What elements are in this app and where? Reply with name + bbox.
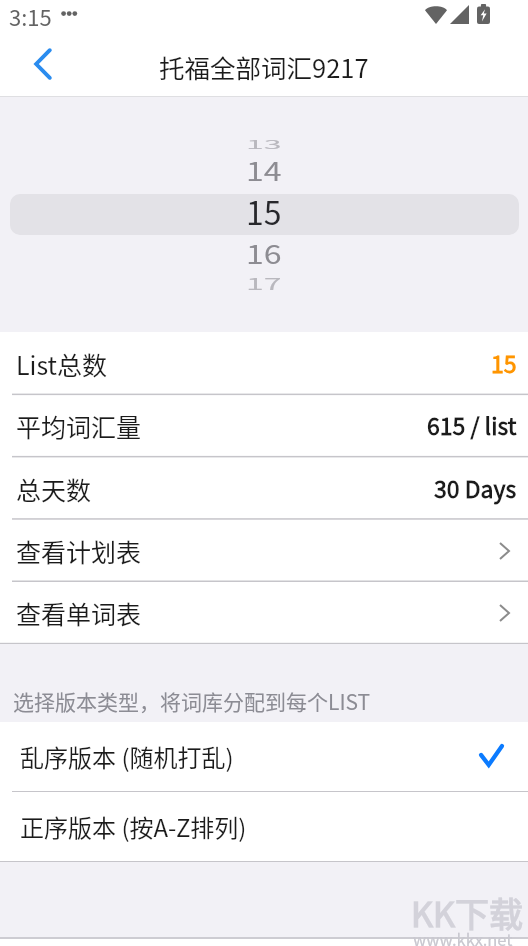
staticText: 16 (246, 234, 282, 272)
button[interactable]: 查看计划表 (0, 519, 528, 581)
button[interactable]: 平均词汇量 (0, 394, 528, 456)
staticText: 托福全部词汇9217 (159, 48, 369, 85)
staticText: 30 Days (434, 471, 517, 504)
staticText: 总天数 (16, 471, 92, 507)
staticText: 17 (246, 271, 282, 294)
staticText: 13 (246, 136, 282, 152)
staticText: 3:15 (9, 0, 52, 31)
staticText: 乱序版本 (随机打乱) (20, 739, 234, 774)
staticText: 查看单词表 (16, 595, 142, 631)
staticText: 平均词汇量 (16, 408, 142, 444)
staticText: 615 / list (427, 408, 517, 441)
other: Selected (480, 745, 503, 767)
staticText: 正序版本 (按A-Z排列) (20, 809, 247, 844)
button[interactable]: List总数 (0, 332, 528, 394)
staticText: 15 (246, 188, 282, 234)
button[interactable]: 查看单词表 (0, 581, 528, 643)
button[interactable]: 乱序版本 (随机打乱) (0, 722, 528, 791)
button[interactable]: Back (9, 31, 77, 97)
staticText: 查看计划表 (16, 533, 142, 569)
staticText: 14 (246, 152, 282, 188)
staticText: List总数 (16, 346, 108, 382)
button[interactable]: 正序版本 (按A-Z排列) (0, 792, 528, 861)
staticText: www.kkx.net (413, 927, 513, 946)
staticText: KK下载 (411, 888, 523, 937)
staticText: 15 (491, 346, 517, 379)
staticText: 选择版本类型，将词库分配到每个LIST (13, 686, 371, 716)
button[interactable]: 总天数 (0, 457, 528, 519)
